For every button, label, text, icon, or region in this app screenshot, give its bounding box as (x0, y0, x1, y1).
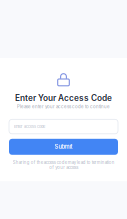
staticText: Enter Your Access Code (15, 93, 112, 103)
staticText: Submit (54, 143, 72, 150)
staticText: Enter access code (14, 124, 45, 129)
staticText: Sharing of the access code may lead to t… (12, 160, 114, 170)
staticText: Please enter your access code to continu… (17, 104, 110, 109)
button[interactable]: Submit (9, 139, 118, 155)
